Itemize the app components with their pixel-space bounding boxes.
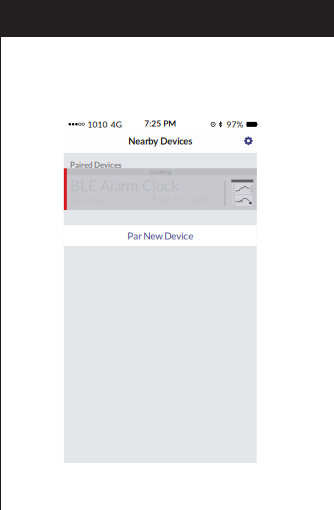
button[interactable]: Locating — [64, 168, 257, 210]
button[interactable]: Settings — [240, 132, 257, 149]
staticText: Nearby Devices — [128, 135, 192, 146]
staticText: BLE Alarm Clock — [70, 177, 179, 194]
staticText: 4G — [111, 119, 122, 129]
button[interactable]: Par New Device — [64, 225, 257, 246]
staticText: Locating — [149, 168, 171, 176]
staticText: 1010 — [88, 119, 108, 129]
staticText: Paired Devices — [70, 160, 121, 169]
staticText: 97% — [226, 119, 243, 129]
staticText: 7:25 PM — [144, 118, 176, 128]
staticText: Par New Device — [127, 230, 193, 242]
